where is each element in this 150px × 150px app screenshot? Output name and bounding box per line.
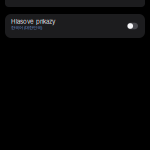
staticText: 한국어 (대한민국)	[11, 25, 42, 30]
staticText: Hlasové příkazy	[11, 18, 55, 25]
button[interactable]: Hlasové příkazy	[127, 23, 138, 29]
